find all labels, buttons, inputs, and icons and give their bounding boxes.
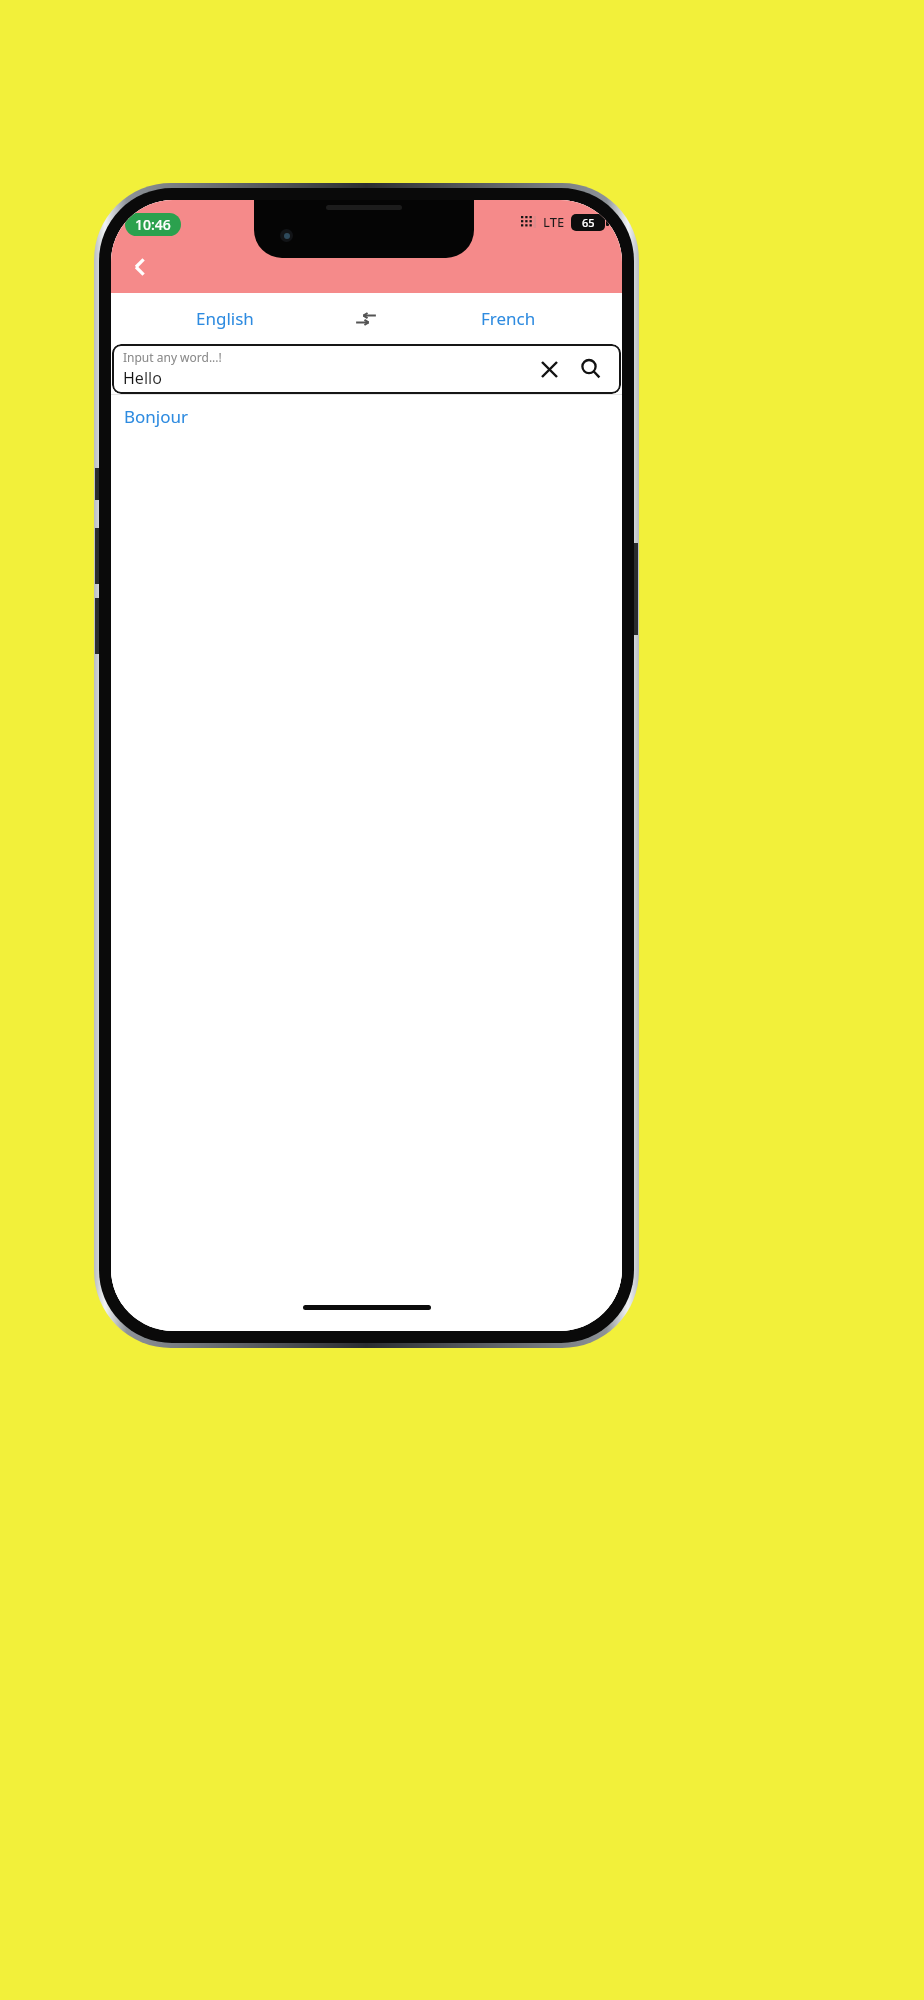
button[interactable]: Clear [533, 353, 565, 385]
staticText: Hello [123, 367, 162, 389]
staticText: Input any word...! [123, 349, 222, 365]
button[interactable]: Input any word...! [112, 344, 621, 394]
staticText: English [196, 307, 254, 330]
staticText: 65 [582, 215, 595, 230]
button[interactable]: Search [575, 353, 607, 385]
button[interactable]: Swap languages [338, 293, 394, 344]
staticText: 10:46 [135, 215, 171, 234]
button[interactable]: French [394, 307, 622, 330]
staticText: LTE [543, 213, 565, 231]
button[interactable]: Bonjour [111, 395, 622, 437]
staticText: French [481, 307, 536, 330]
button[interactable]: English [111, 307, 338, 330]
staticText: Bonjour [124, 405, 189, 428]
button[interactable]: Back [119, 246, 161, 288]
